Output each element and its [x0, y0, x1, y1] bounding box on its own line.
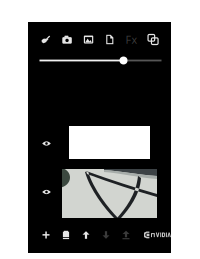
- button[interactable]: Merge down: [116, 227, 136, 243]
- button[interactable]: Toggle layer 2 visibility: [38, 185, 54, 199]
- button[interactable]: Move layer up: [76, 227, 96, 243]
- button[interactable]: Brush: [35, 30, 56, 48]
- button[interactable]: Add layer: [36, 227, 56, 243]
- button[interactable]: Effects: [121, 30, 142, 48]
- button[interactable]: Document: [99, 30, 121, 48]
- staticText: Fx: [125, 32, 137, 47]
- button[interactable]: Photo library: [78, 30, 99, 48]
- button[interactable]: Move layer down: [96, 227, 116, 243]
- button[interactable]: Layer 2 thumbnail: [62, 169, 157, 218]
- button[interactable]: Layers: [142, 30, 164, 48]
- button[interactable]: Delete layer: [56, 227, 76, 243]
- button[interactable]: Toggle layer 1 visibility: [38, 136, 54, 150]
- button[interactable]: Camera: [56, 30, 78, 48]
